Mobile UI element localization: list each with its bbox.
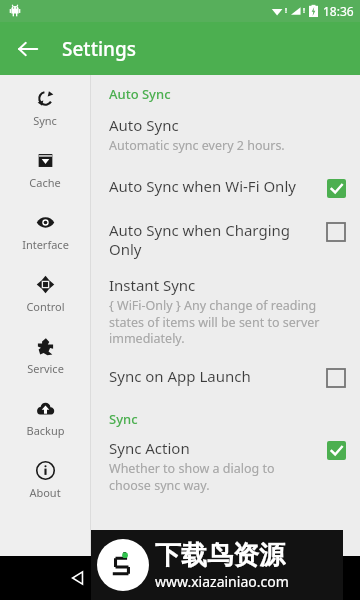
staticText: Cache [29, 175, 61, 190]
staticText: Sync on App Launch [109, 366, 251, 386]
staticText: Interface [22, 237, 69, 252]
staticText: Instant Sync [109, 275, 196, 295]
button[interactable]: Unchecked [326, 222, 346, 242]
button[interactable]: Back [70, 570, 86, 586]
staticText: www.xiazainiao.com [155, 572, 289, 591]
staticText: ! [303, 6, 305, 16]
button[interactable]: Checked [326, 178, 346, 198]
staticText: Service [27, 361, 64, 376]
staticText: Auto Sync [109, 85, 171, 103]
button[interactable]: About [0, 456, 90, 518]
button[interactable]: Service [0, 332, 90, 394]
button[interactable]: Unchecked [326, 368, 346, 388]
staticText: 18:36 [323, 3, 354, 19]
staticText: Settings [62, 36, 136, 62]
button[interactable]: Auto Sync when Charging Only [109, 220, 346, 259]
staticText: Whether to show a dialog to choose sync … [109, 460, 316, 493]
button[interactable]: Backup [0, 394, 90, 456]
staticText: Automatic sync every 2 hours. [109, 137, 285, 154]
button[interactable]: Sync [0, 84, 90, 146]
staticText: Auto Sync [109, 115, 179, 135]
staticText: Auto Sync when Wi-Fi Only [109, 176, 296, 196]
staticText: Sync Action [109, 438, 190, 458]
button[interactable]: Sync on App Launch [109, 366, 346, 388]
staticText: ! [285, 6, 287, 16]
staticText: Backup [26, 423, 65, 438]
button[interactable]: Checked [326, 440, 346, 460]
staticText: Control [26, 299, 65, 314]
staticText: About [29, 485, 61, 500]
button[interactable]: Navigate up [8, 29, 48, 69]
button[interactable]: Cache [0, 146, 90, 208]
staticText: Auto Sync when Charging Only [109, 220, 316, 259]
button[interactable]: Sync Action [109, 438, 346, 493]
staticText: 下载鸟资源 [155, 539, 285, 572]
button[interactable]: Instant Sync [109, 275, 346, 346]
button[interactable]: Auto Sync when Wi-Fi Only [109, 176, 346, 198]
button[interactable]: Control [0, 270, 90, 332]
button[interactable]: Auto Sync [109, 115, 346, 154]
staticText: Sync [109, 410, 138, 428]
staticText: Sync [33, 113, 57, 128]
button[interactable]: Interface [0, 208, 90, 270]
staticText: { WiFi-Only } Any change of reading stat… [109, 297, 346, 346]
